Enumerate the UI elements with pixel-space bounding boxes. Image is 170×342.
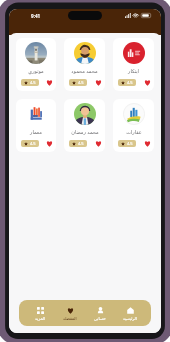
staticText: المزيد — [35, 316, 46, 321]
staticText: 4.5 — [127, 141, 133, 146]
button[interactable]: Favorite — [46, 79, 53, 86]
staticText: المفضلة — [63, 316, 77, 321]
staticText: 4.5 — [30, 80, 36, 85]
button[interactable]: 4.5 — [72, 80, 84, 85]
staticText: عقارات — [126, 129, 142, 135]
staticText: ابتكار — [128, 68, 139, 74]
button[interactable]: الرئيسية — [115, 300, 145, 326]
button[interactable]: محمد محمود — [64, 38, 105, 91]
staticText: 4.5 — [30, 141, 36, 146]
button[interactable]: محمد رمضان — [64, 99, 105, 152]
staticText: معمار — [30, 129, 42, 135]
button[interactable]: Favorite — [144, 79, 151, 86]
button[interactable]: معمار — [16, 99, 56, 152]
button[interactable]: موتوري — [16, 38, 56, 91]
button[interactable]: Favorite — [46, 140, 53, 147]
staticText: حسابي — [94, 316, 106, 321]
button[interactable]: ابتكار — [113, 38, 154, 91]
button[interactable]: 4.5 — [121, 141, 133, 146]
staticText: الرئيسية — [123, 316, 137, 321]
button[interactable]: Favorite — [95, 140, 102, 147]
button[interactable]: 4.5 — [24, 80, 36, 85]
staticText: موتوري — [28, 68, 44, 74]
staticText: 4.5 — [78, 141, 84, 146]
staticText: 9:41 — [31, 13, 41, 19]
staticText: 4.5 — [127, 80, 133, 85]
button[interactable]: 4.5 — [72, 141, 84, 146]
button[interactable]: عقارات — [113, 99, 154, 152]
staticText: محمد رمضان — [71, 129, 99, 136]
staticText: محمد محمود — [71, 68, 98, 75]
button[interactable]: المزيد — [25, 300, 55, 326]
button[interactable]: 4.5 — [121, 80, 133, 85]
button[interactable]: المفضلة — [55, 300, 85, 326]
staticText: 4.5 — [78, 80, 84, 85]
button[interactable]: Favorite — [95, 79, 102, 86]
button[interactable]: 4.5 — [24, 141, 36, 146]
button[interactable]: Favorite — [144, 140, 151, 147]
button[interactable]: حسابي — [85, 300, 115, 326]
